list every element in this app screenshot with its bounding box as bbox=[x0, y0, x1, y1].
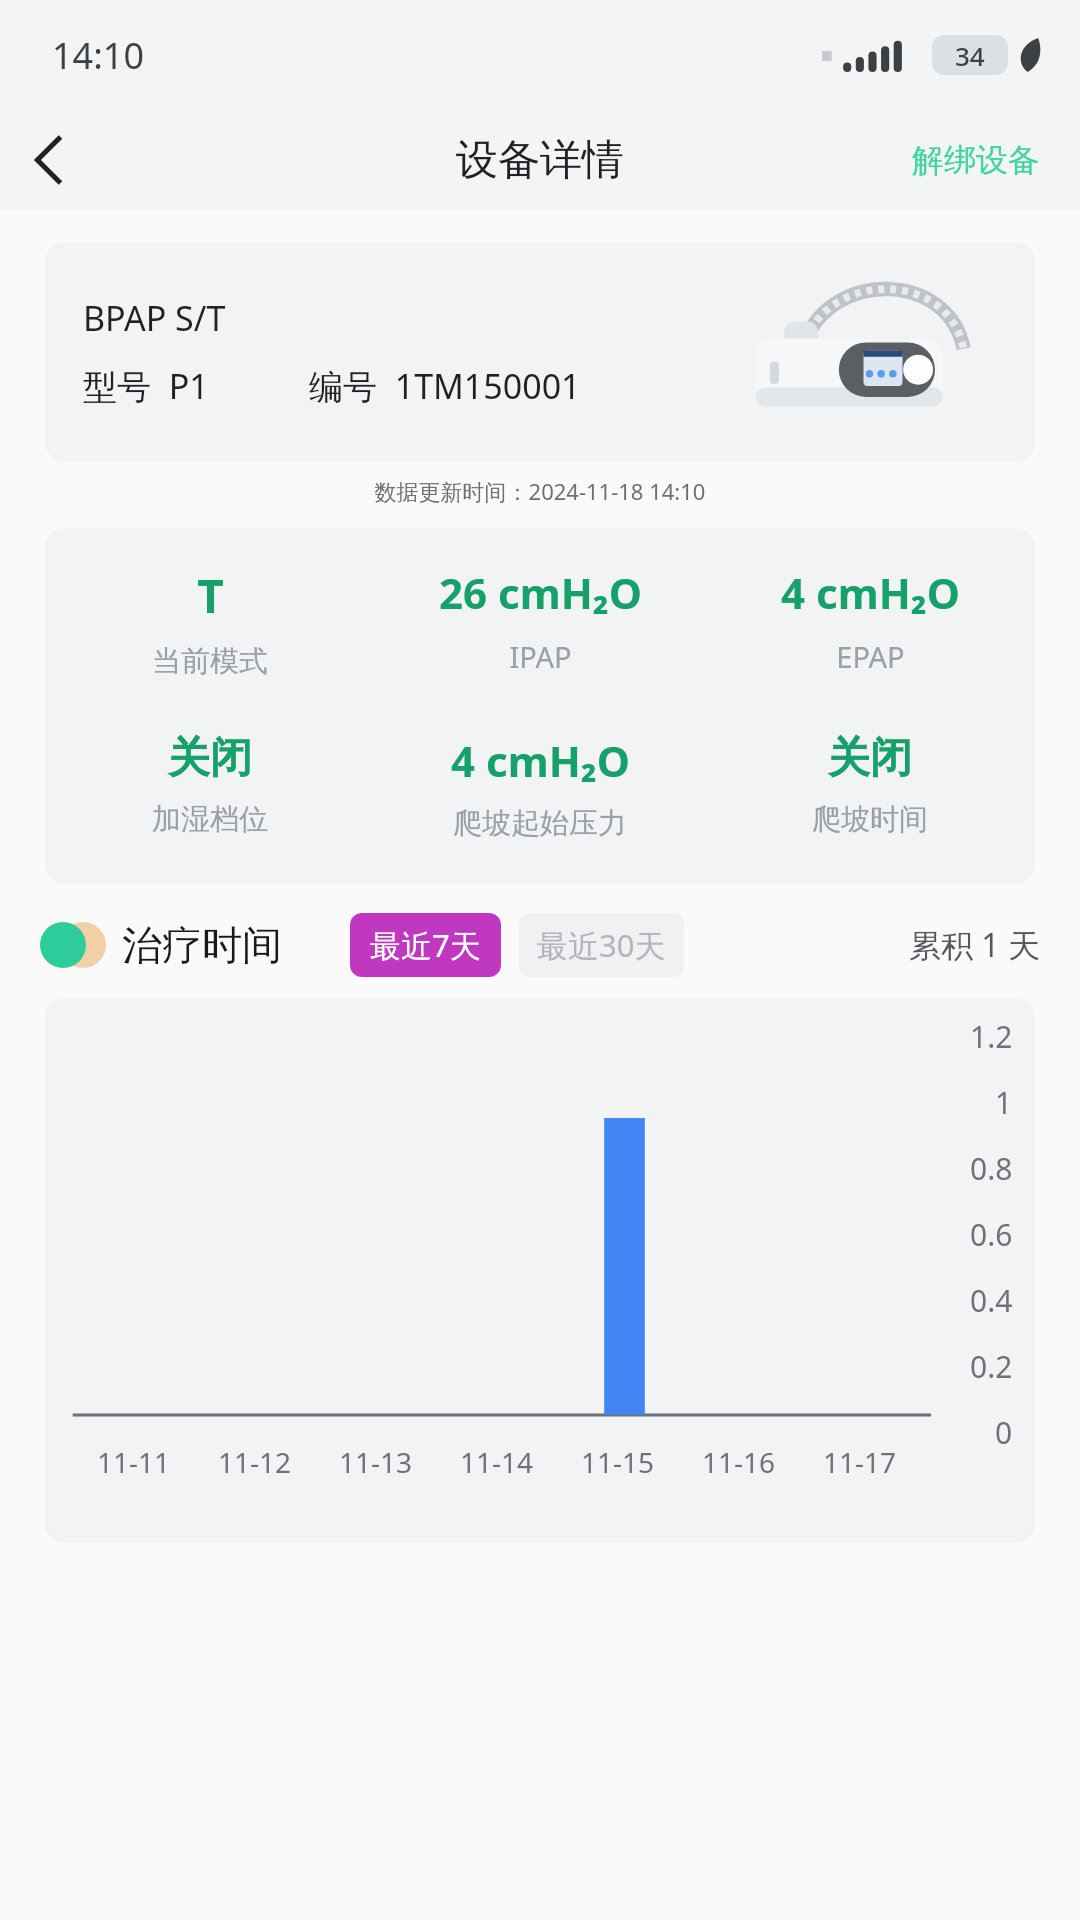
staticText: 26 cmH₂O bbox=[439, 564, 642, 621]
staticText: 解绑设备 bbox=[912, 140, 1040, 180]
staticText: 0 bbox=[995, 1412, 1013, 1453]
button[interactable]: 解绑设备 bbox=[906, 130, 1046, 190]
staticText: 4 cmH₂O bbox=[451, 732, 630, 789]
staticText: 爬坡时间 bbox=[812, 801, 928, 838]
button[interactable]: BPAP S/T bbox=[45, 242, 1035, 462]
staticText: 11-12 bbox=[194, 1443, 315, 1481]
staticText: 0.8 bbox=[970, 1148, 1013, 1189]
staticText: 关闭 bbox=[168, 732, 252, 785]
staticText: T bbox=[197, 564, 224, 627]
staticText: 最近7天 bbox=[370, 924, 481, 966]
button[interactable]: 4 cmH₂O bbox=[375, 732, 705, 842]
button[interactable]: 关闭 bbox=[45, 732, 375, 838]
staticText: 1 bbox=[995, 1082, 1013, 1123]
button[interactable]: 最近30天 bbox=[519, 913, 684, 977]
staticText: 1.2 bbox=[970, 1016, 1013, 1057]
button[interactable]: 关闭 bbox=[705, 732, 1035, 838]
staticText: 爬坡起始压力 bbox=[453, 805, 627, 842]
staticText: 11-17 bbox=[799, 1443, 920, 1481]
staticText: 4 cmH₂O bbox=[781, 564, 960, 621]
button[interactable]: T bbox=[45, 564, 375, 680]
staticText: 11-15 bbox=[557, 1443, 678, 1481]
staticText: 0.4 bbox=[970, 1280, 1013, 1321]
button[interactable]: 26 cmH₂O bbox=[375, 564, 705, 676]
staticText: 加湿档位 bbox=[152, 801, 268, 838]
staticText: 当前模式 bbox=[152, 643, 268, 680]
staticText: 11-13 bbox=[315, 1443, 436, 1481]
staticText: 型号 P1 bbox=[83, 363, 209, 409]
staticText: BPAP S/T bbox=[83, 295, 226, 341]
staticText: EPAP bbox=[836, 637, 905, 676]
staticText: 0.2 bbox=[970, 1346, 1013, 1387]
staticText: IPAP bbox=[509, 637, 572, 676]
button[interactable]: 4 cmH₂O bbox=[705, 564, 1035, 676]
staticText: 编号 1TM150001 bbox=[309, 363, 581, 409]
staticText: 治疗时间 bbox=[122, 920, 282, 970]
staticText: 最近30天 bbox=[537, 924, 666, 966]
staticText: 11-11 bbox=[73, 1443, 194, 1481]
staticText: 累积 1 天 bbox=[909, 923, 1040, 967]
button[interactable]: 最近7天 bbox=[350, 913, 501, 977]
staticText: 34 bbox=[955, 38, 985, 73]
staticText: 关闭 bbox=[828, 732, 912, 785]
staticText: 11-16 bbox=[678, 1443, 799, 1481]
button[interactable]: Back bbox=[0, 110, 100, 210]
staticText: 数据更新时间：2024-11-18 14:10 bbox=[0, 476, 1080, 506]
staticText: 11-14 bbox=[436, 1443, 557, 1481]
staticText: 0.6 bbox=[970, 1214, 1013, 1255]
staticText: 设备详情 bbox=[456, 134, 624, 187]
staticText: 14:10 bbox=[52, 31, 145, 80]
